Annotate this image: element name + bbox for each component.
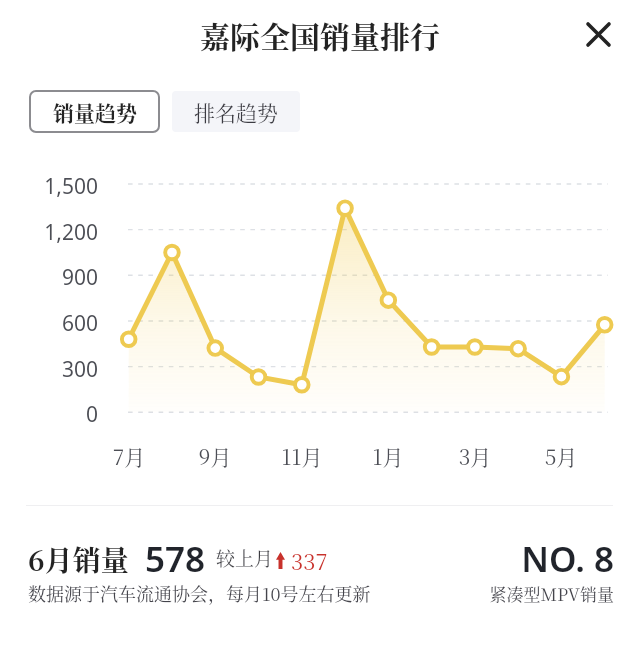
staticText: 1,200 <box>28 218 98 247</box>
button[interactable]: 排名趋势 <box>172 91 300 132</box>
staticText: 9月 <box>180 441 250 471</box>
staticText: 销量趋势 <box>53 97 137 127</box>
staticText: 嘉际全国销量排行 <box>0 13 640 56</box>
staticText: 11月 <box>267 441 337 471</box>
staticText: 3月 <box>440 441 510 471</box>
staticText: 紧凑型MPV销量 <box>400 581 614 605</box>
button[interactable]: 6月销量 <box>0 506 640 660</box>
staticText: 1月 <box>353 441 423 471</box>
button[interactable]: Monthly sales trend chart <box>0 150 640 480</box>
button[interactable]: 销量趋势 <box>29 90 160 133</box>
other: Increase <box>276 552 285 569</box>
button[interactable]: Close <box>576 12 620 56</box>
staticText: 较上月 <box>216 544 274 571</box>
staticText: 578 <box>145 535 206 583</box>
staticText: 0 <box>28 400 98 429</box>
staticText: 7月 <box>94 441 164 471</box>
staticText: 337 <box>291 545 328 577</box>
staticText: 排名趋势 <box>194 97 278 127</box>
staticText: 300 <box>28 355 98 384</box>
staticText: 600 <box>28 309 98 338</box>
staticText: 900 <box>28 263 98 292</box>
staticText: 5月 <box>526 441 596 471</box>
staticText: 6月销量 <box>28 539 129 579</box>
staticText: NO. 8 <box>400 535 614 583</box>
staticText: 数据源于汽车流通协会，每月10号左右更新 <box>28 580 371 606</box>
staticText: 1,500 <box>28 172 98 201</box>
